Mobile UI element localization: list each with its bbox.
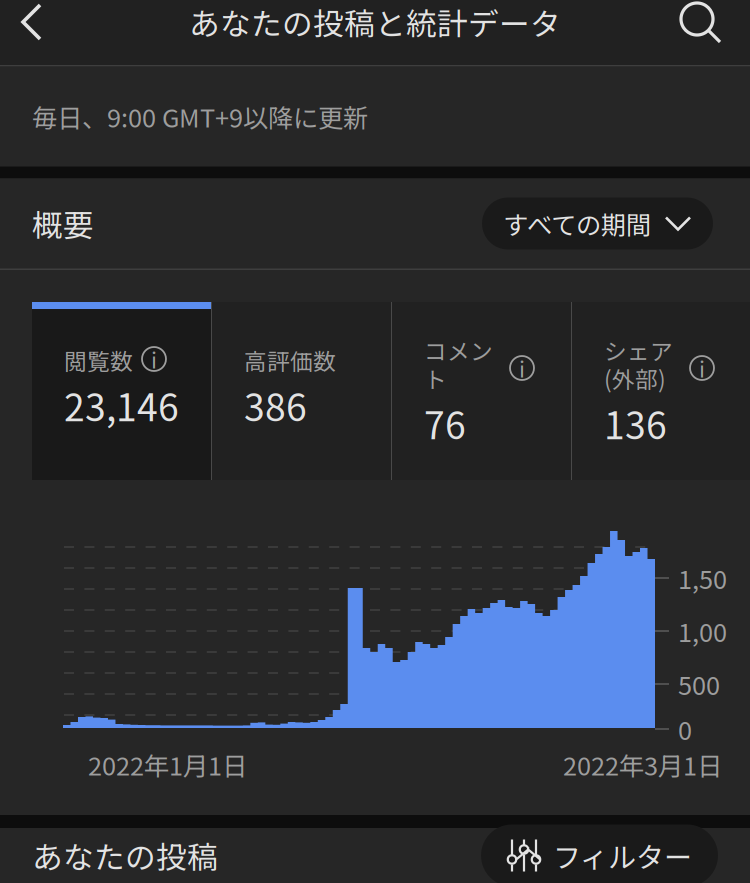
staticText: 1,50 — [678, 560, 727, 596]
staticText: 23,146 — [64, 378, 179, 432]
staticText: フィルター — [553, 835, 692, 876]
staticText: あなたの投稿と統計データ — [189, 0, 561, 44]
staticText: 2022年1月1日 — [88, 746, 247, 783]
staticText: 0 — [678, 711, 692, 747]
staticText: i — [151, 343, 157, 375]
staticText: ト — [424, 362, 447, 394]
staticText: シェア — [604, 334, 673, 366]
staticText: 76 — [424, 396, 466, 450]
staticText: 高評価数 — [244, 344, 336, 376]
staticText: 386 — [244, 378, 307, 432]
staticText: 2022年3月1日 — [563, 746, 722, 783]
button[interactable]: i — [572, 302, 750, 480]
button[interactable]: 高評価数 — [212, 302, 391, 480]
staticText: (外部) — [604, 362, 666, 394]
staticText: コメン — [424, 334, 493, 366]
staticText: 概要 — [32, 201, 94, 246]
button[interactable]: フィルター — [481, 824, 718, 883]
staticText: 閲覧数 — [64, 344, 133, 376]
staticText: 毎日、9:00 GMT+9以降に更新 — [32, 98, 368, 135]
staticText: 1,00 — [678, 613, 727, 649]
staticText: あなたの投稿 — [32, 833, 218, 878]
staticText: i — [699, 352, 705, 384]
staticText: 136 — [604, 396, 667, 450]
button[interactable]: Back — [0, 0, 64, 44]
staticText: すべての期間 — [503, 205, 651, 242]
staticText: i — [519, 352, 525, 384]
button[interactable]: i — [392, 302, 571, 480]
staticText: 500 — [678, 666, 720, 702]
button[interactable]: i — [32, 302, 211, 480]
button[interactable]: Search — [672, 0, 730, 44]
button[interactable]: すべての期間 — [482, 197, 713, 249]
